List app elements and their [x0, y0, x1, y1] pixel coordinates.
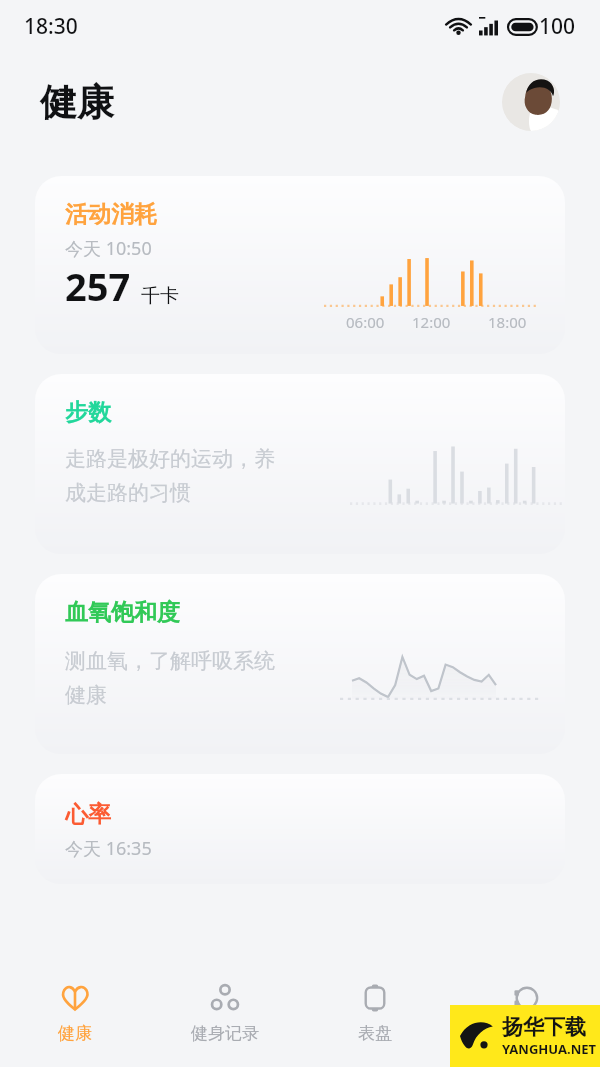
- staticText: YANGHUA.NET: [502, 1040, 596, 1058]
- staticText: 18:00: [488, 312, 527, 332]
- staticText: 健身记录: [191, 1023, 259, 1044]
- staticText: 18:30: [24, 12, 78, 41]
- button[interactable]: 设备: [450, 959, 600, 1067]
- button[interactable]: 心率: [35, 774, 565, 884]
- button[interactable]: 表盘: [300, 959, 450, 1067]
- staticText: 06:00: [346, 312, 385, 332]
- staticText: 健康: [58, 1023, 92, 1044]
- staticText: 今天 16:35: [65, 836, 152, 861]
- staticText: 100: [539, 12, 576, 41]
- button[interactable]: 步数: [35, 374, 565, 554]
- staticText: 活动消耗: [65, 200, 157, 229]
- staticText: 步数: [65, 398, 111, 427]
- button[interactable]: 活动消耗: [35, 176, 565, 354]
- staticText: 走路是极好的运动，养 成走路的习惯: [65, 446, 275, 507]
- button[interactable]: 血氧饱和度: [35, 574, 565, 754]
- button[interactable]: 健身记录: [150, 959, 300, 1067]
- staticText: 今天 10:50: [65, 236, 152, 261]
- staticText: 12:00: [412, 312, 451, 332]
- staticText: 血氧饱和度: [65, 598, 180, 627]
- staticText: 设备: [508, 1023, 542, 1044]
- staticText: 千卡: [141, 284, 179, 308]
- button[interactable]: 健康: [0, 959, 150, 1067]
- staticText: 扬华下载: [502, 1014, 586, 1040]
- staticText: 测血氧，了解呼吸系统 健康: [65, 648, 275, 709]
- staticText: 心率: [65, 800, 111, 829]
- staticText: 健康: [40, 79, 114, 126]
- button[interactable]: Profile: [502, 73, 560, 131]
- staticText: 表盘: [358, 1023, 392, 1044]
- staticText: 257: [65, 260, 131, 312]
